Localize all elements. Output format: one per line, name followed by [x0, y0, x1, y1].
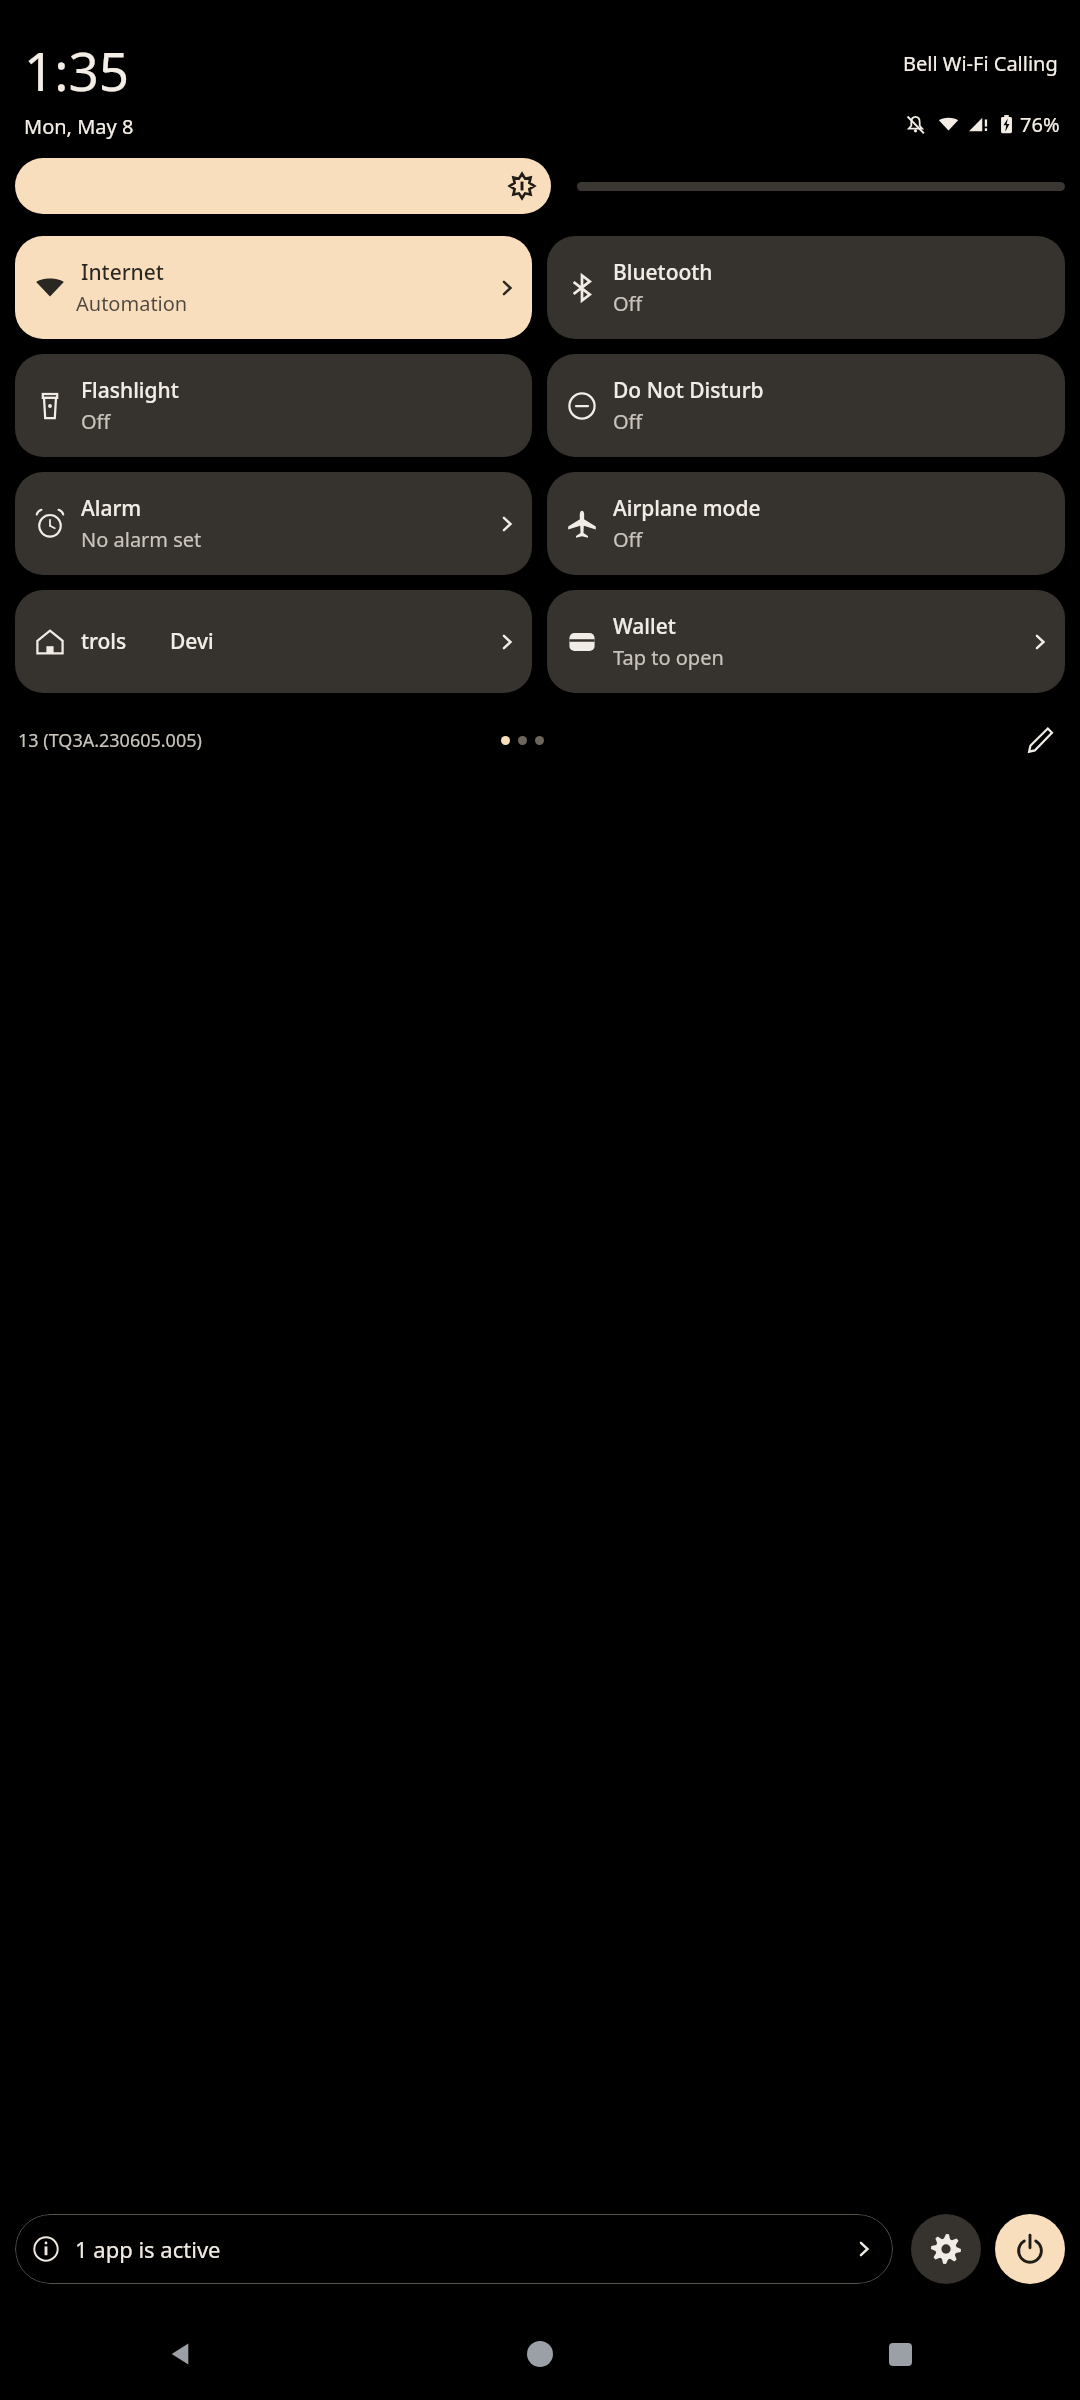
button[interactable]: Back — [0, 2318, 360, 2390]
staticText: Bell Wi-Fi Calling — [903, 50, 1058, 77]
staticText: 76% — [1020, 111, 1060, 138]
staticText: Mon, May 8 — [24, 113, 134, 140]
staticText: Tap to open — [613, 644, 724, 671]
staticText: Off — [613, 290, 643, 317]
staticText: 1 app is active — [75, 2234, 221, 2264]
staticText: Internet — [81, 258, 164, 287]
button[interactable]: Internet — [15, 236, 532, 339]
button[interactable]: Wallet — [547, 590, 1065, 693]
staticText: Wallet — [613, 612, 676, 641]
staticText: Automation — [76, 290, 188, 317]
button[interactable]: Recent apps — [720, 2318, 1080, 2390]
staticText: Flashlight — [81, 376, 179, 405]
button[interactable]: trols Devi — [15, 590, 532, 693]
staticText: Off — [81, 408, 111, 435]
button[interactable]: Settings — [911, 2214, 981, 2284]
button[interactable]: Power — [995, 2214, 1065, 2284]
button[interactable]: Airplane mode — [547, 472, 1065, 575]
button[interactable]: Home — [360, 2318, 720, 2390]
button[interactable]: Brightness — [15, 158, 1065, 214]
staticText: No alarm set — [81, 526, 202, 553]
staticText: 1:35 — [24, 34, 130, 106]
button[interactable]: Edit tiles — [1018, 718, 1062, 762]
staticText: trols Devi — [81, 627, 214, 656]
button[interactable]: Alarm — [15, 472, 532, 575]
button[interactable]: Flashlight — [15, 354, 532, 457]
staticText: Bluetooth — [613, 258, 713, 287]
staticText: Off — [613, 408, 643, 435]
staticText: Airplane mode — [613, 494, 761, 523]
staticText: Alarm — [81, 494, 142, 523]
button[interactable]: 1 app is active — [15, 2214, 893, 2284]
staticText: Off — [613, 526, 643, 553]
button[interactable]: Do Not Disturb — [547, 354, 1065, 457]
button[interactable]: Bluetooth — [547, 236, 1065, 339]
staticText: Do Not Disturb — [613, 376, 764, 405]
staticText: 13 (TQ3A.230605.005) — [18, 728, 202, 753]
